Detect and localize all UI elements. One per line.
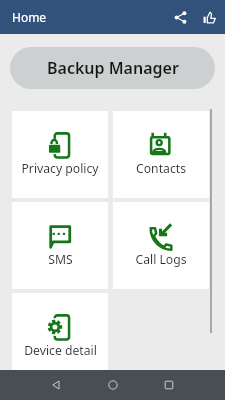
button[interactable]: Home: [99, 371, 127, 399]
staticText: Privacy policy: [21, 160, 99, 177]
staticText: Home: [12, 9, 47, 25]
staticText: Contacts: [136, 160, 186, 177]
button[interactable]: Device detail: [12, 293, 108, 380]
button[interactable]: Privacy policy: [12, 111, 108, 198]
button[interactable]: Back: [42, 371, 70, 399]
button[interactable]: Contacts: [113, 111, 209, 198]
staticText: Device detail: [24, 342, 97, 359]
button[interactable]: SMS: [12, 202, 108, 289]
button[interactable]: Recents: [155, 371, 183, 399]
button[interactable]: Call Logs: [113, 202, 209, 289]
button[interactable]: Backup Manager: [10, 47, 215, 89]
staticText: Call Logs: [135, 251, 187, 268]
button[interactable]: Like: [196, 4, 222, 30]
staticText: Backup Manager: [47, 57, 179, 79]
staticText: SMS: [48, 251, 73, 268]
button[interactable]: Share: [167, 4, 193, 30]
